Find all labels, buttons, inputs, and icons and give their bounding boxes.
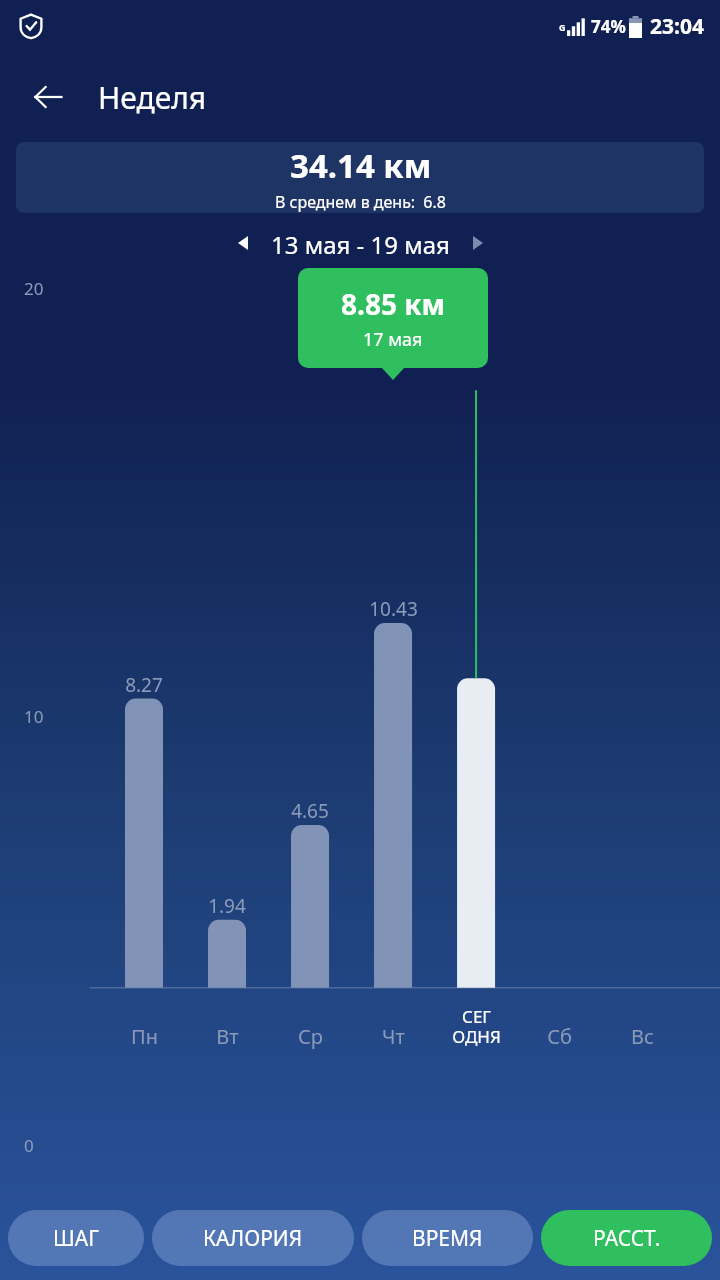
staticText: КАЛОРИЯ: [203, 1224, 303, 1253]
staticText: ШАГ: [53, 1224, 99, 1253]
staticText: 1.94: [208, 893, 246, 919]
staticText: Сб: [547, 1023, 572, 1050]
button[interactable]: 8.85 км: [298, 268, 488, 368]
staticText: 17 мая: [363, 327, 423, 352]
staticText: Пн: [131, 1023, 158, 1050]
staticText: 0: [24, 1134, 34, 1157]
button[interactable]: Back: [20, 69, 76, 125]
staticText: ВРЕМЯ: [412, 1224, 483, 1253]
staticText: Ср: [298, 1023, 323, 1050]
button[interactable]: 34.14 км: [16, 142, 704, 213]
staticText: 13 мая - 19 мая: [271, 228, 450, 258]
staticText: 20: [24, 277, 44, 300]
staticText: СЕГ ОДНЯ: [452, 1005, 501, 1048]
staticText: Неделя: [98, 77, 207, 118]
button[interactable]: КАЛОРИЯ: [152, 1210, 354, 1266]
staticText: 23:04: [650, 12, 704, 41]
staticText: Чт: [382, 1023, 405, 1050]
staticText: 8.27: [125, 672, 163, 698]
staticText: В среднем в день: 6.8: [275, 191, 446, 213]
button[interactable]: ШАГ: [8, 1210, 144, 1266]
button[interactable]: ВРЕМЯ: [362, 1210, 533, 1266]
staticText: 34.14 км: [290, 143, 432, 188]
staticText: 74%: [591, 15, 626, 38]
button[interactable]: Next week: [460, 228, 496, 258]
staticText: РАССТ.: [593, 1224, 661, 1253]
button[interactable]: РАССТ.: [541, 1210, 712, 1266]
staticText: 4.65: [291, 798, 329, 824]
staticText: Вс: [631, 1023, 654, 1050]
staticText: 8.85 км: [341, 285, 445, 323]
staticText: 10: [24, 705, 44, 728]
staticText: 10.43: [369, 596, 418, 622]
button[interactable]: Previous week: [225, 228, 261, 258]
staticText: Вт: [216, 1023, 239, 1050]
staticText: G: [559, 21, 566, 33]
